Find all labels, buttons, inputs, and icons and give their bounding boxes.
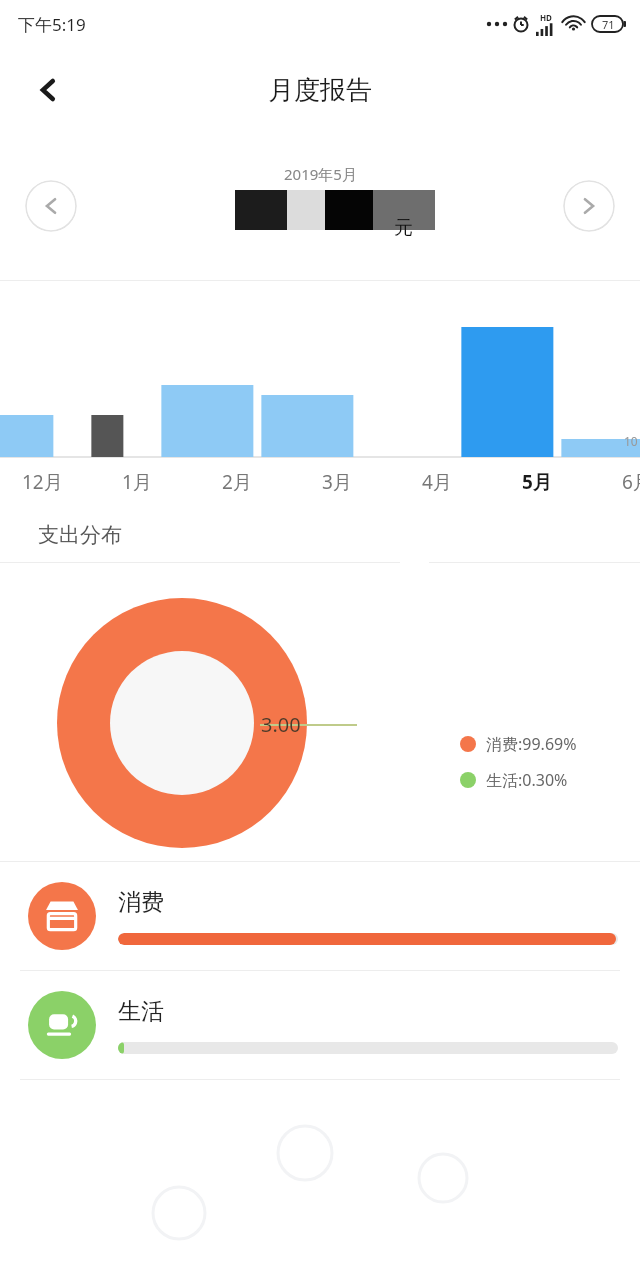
staticText: 3.00 [261, 711, 301, 738]
staticText: 10 [624, 433, 638, 449]
staticText: 12月 [22, 469, 63, 495]
staticText: 消费:99.69% [486, 733, 577, 755]
staticText: 月度报告 [268, 74, 372, 107]
staticText: 元 [394, 216, 413, 240]
staticText: 5月 [522, 469, 552, 495]
staticText: 生活:0.30% [486, 769, 568, 791]
staticText: 2019年5月 [284, 164, 357, 184]
staticText: 4月 [422, 469, 452, 495]
staticText: 2月 [222, 469, 252, 495]
staticText: 消费 [118, 888, 164, 917]
staticText: HD [540, 12, 552, 23]
staticText: 下午5:19 [18, 13, 86, 36]
button[interactable]: Next month [563, 180, 615, 232]
staticText: 6月 [622, 469, 640, 495]
staticText: 生活 [118, 997, 164, 1026]
button[interactable]: Back [18, 60, 78, 120]
button[interactable]: Previous month [25, 180, 77, 232]
button[interactable]: 生活 [0, 971, 640, 1079]
staticText: 71 [602, 17, 615, 32]
staticText: 3月 [322, 469, 352, 495]
staticText: 1月 [122, 469, 152, 495]
staticText: 支出分布 [38, 522, 122, 548]
button[interactable]: 消费 [0, 862, 640, 970]
